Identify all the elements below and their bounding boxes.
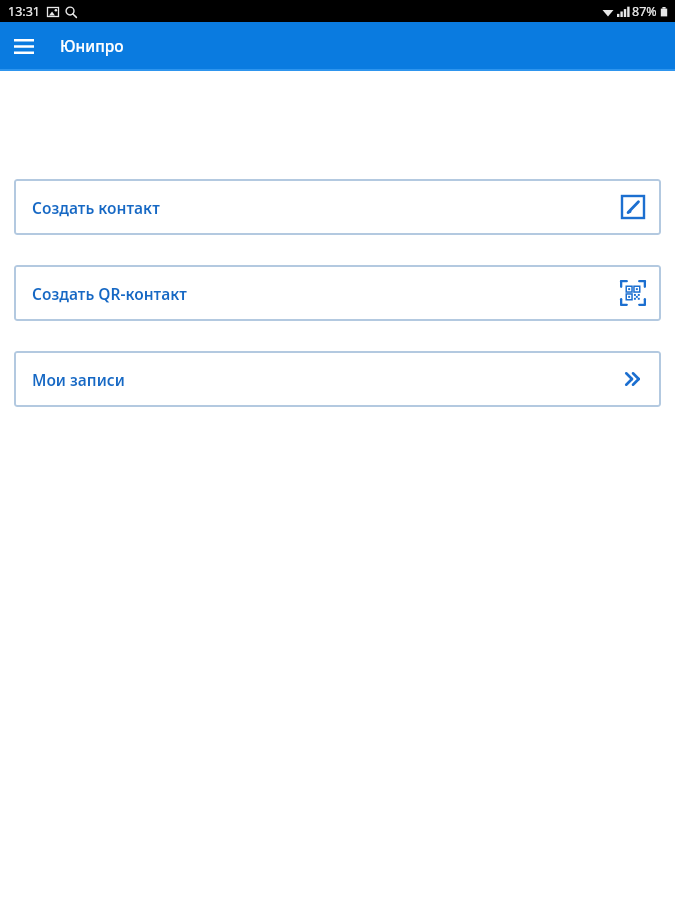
staticText: 13:31 [8, 3, 40, 20]
staticText: Создать контакт [32, 197, 160, 218]
button[interactable]: Мои записи [14, 351, 661, 407]
button[interactable]: Создать QR-контакт [14, 265, 661, 321]
button[interactable]: Меню [8, 30, 40, 62]
button[interactable]: Создать контакт [14, 179, 661, 235]
staticText: 87% [632, 3, 657, 20]
staticText: Юнипро [60, 35, 124, 56]
staticText: Создать QR-контакт [32, 283, 187, 304]
staticText: Мои записи [32, 369, 125, 390]
